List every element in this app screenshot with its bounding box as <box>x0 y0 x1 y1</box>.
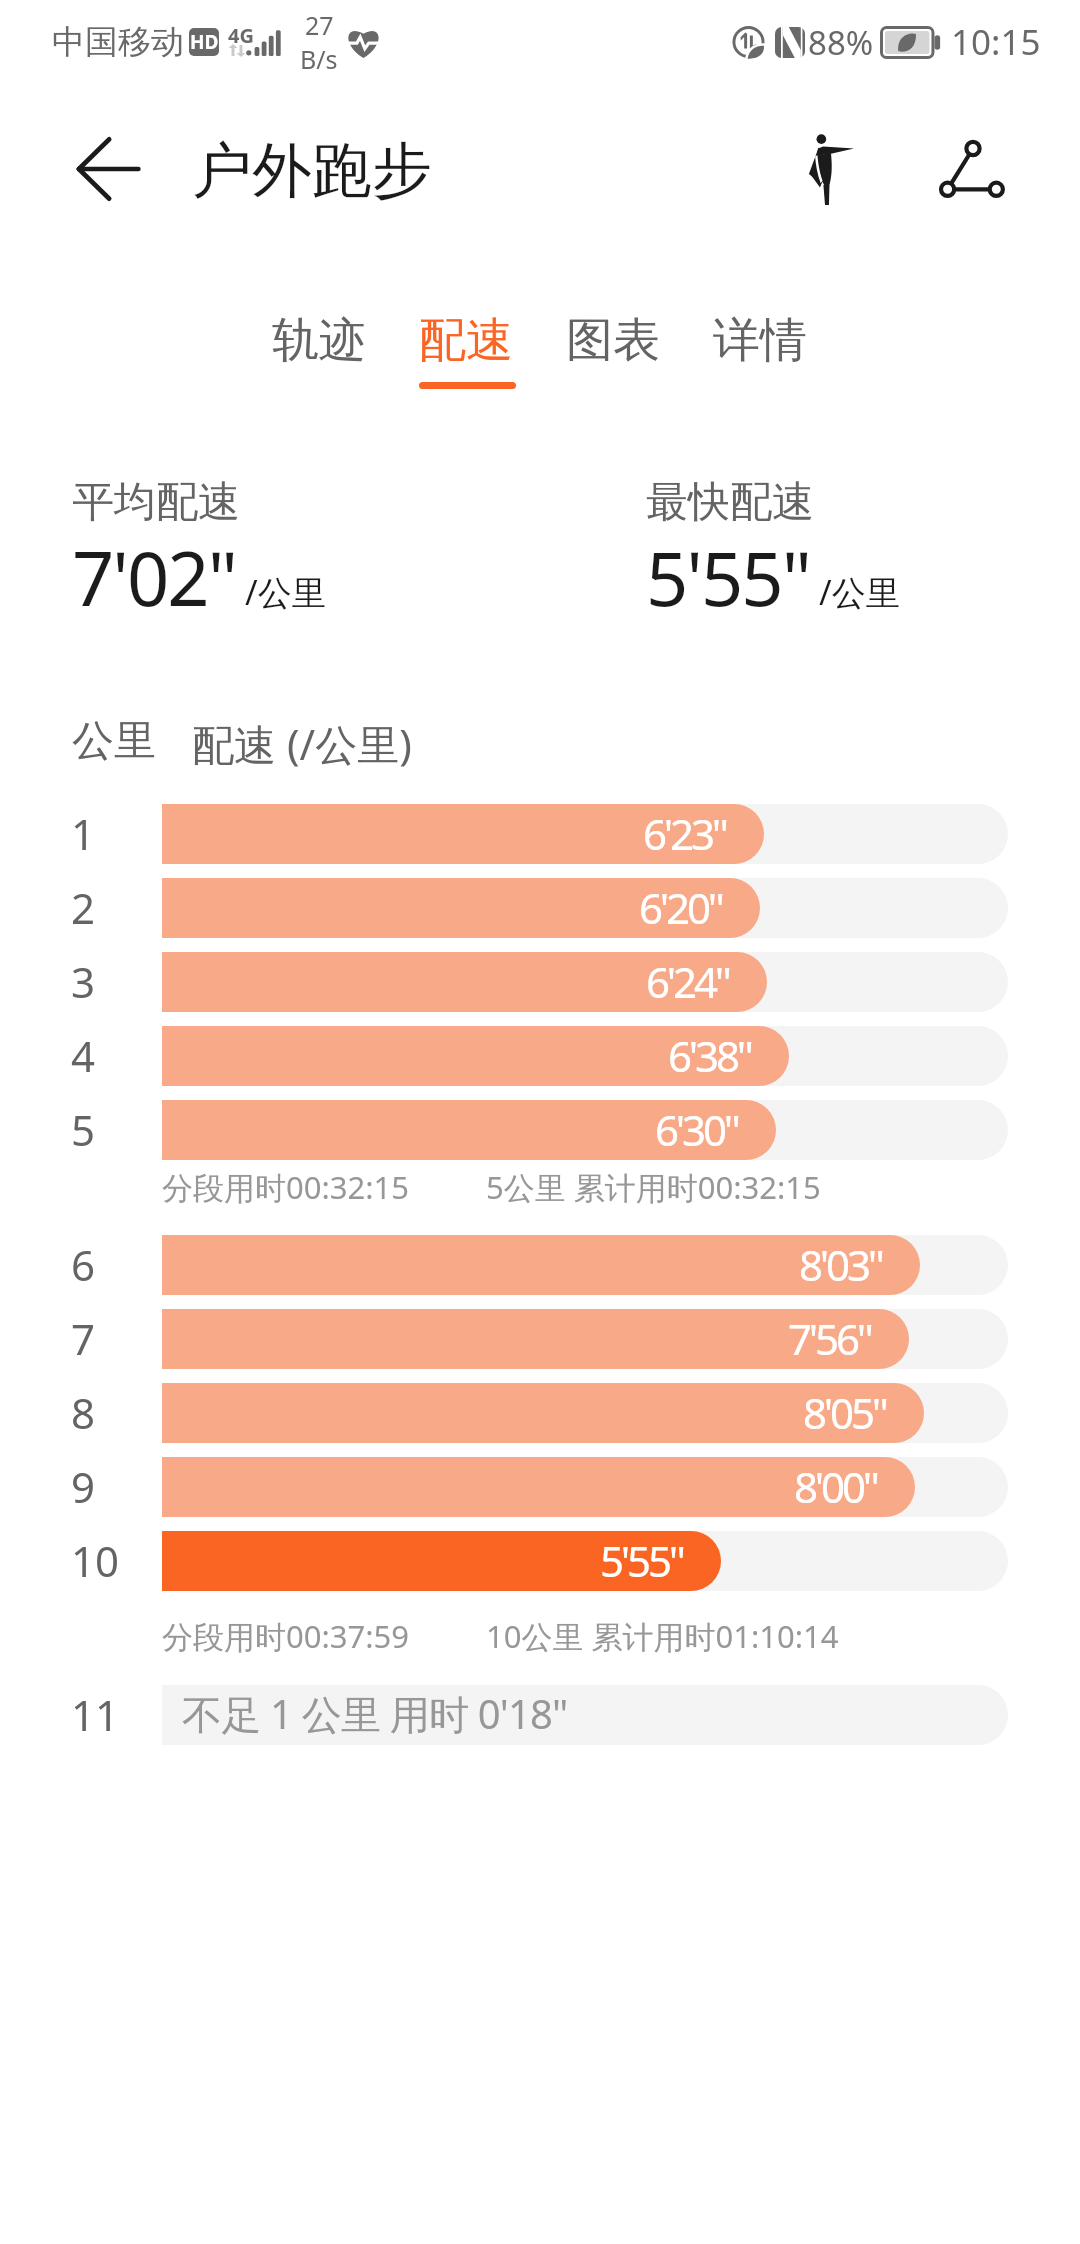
button[interactable]: 8 <box>0 1376 1080 1450</box>
button[interactable]: 3 <box>0 945 1080 1019</box>
staticText: 6'24" <box>646 953 729 1010</box>
staticText: 6'38" <box>668 1027 751 1084</box>
staticText: 9 <box>71 1458 96 1515</box>
button[interactable]: 2 <box>0 871 1080 945</box>
staticText: 5'55" <box>600 1532 683 1589</box>
staticText: 8 <box>71 1384 96 1441</box>
staticText: 平均配速 <box>72 476 240 529</box>
staticText: /公里 <box>245 569 326 615</box>
staticText: 10公里 累计用时01:10:14 <box>486 1615 839 1657</box>
staticText: 2 <box>71 879 96 936</box>
staticText: 分段用时00:37:59 <box>162 1615 410 1657</box>
staticText: /公里 <box>819 569 900 615</box>
button[interactable]: 9 <box>0 1450 1080 1524</box>
button[interactable]: Workout type <box>771 109 891 229</box>
staticText: 6'23" <box>643 805 726 862</box>
staticText: 27 <box>305 8 334 42</box>
staticText: 7'56" <box>788 1310 871 1367</box>
staticText: B/s <box>300 42 338 76</box>
staticText: 8'05" <box>803 1384 886 1441</box>
staticText: 7 <box>71 1310 96 1367</box>
button[interactable]: 配速 <box>392 311 539 411</box>
staticText: 7'02" <box>72 527 236 628</box>
button[interactable]: 4 <box>0 1019 1080 1093</box>
button[interactable]: 6 <box>0 1228 1080 1302</box>
staticText: 公里 <box>72 715 156 768</box>
staticText: 8'00" <box>794 1458 877 1515</box>
staticText: 分段用时00:32:15 <box>162 1166 410 1208</box>
staticText: 6 <box>71 1236 96 1293</box>
staticText: 1 <box>71 805 96 862</box>
staticText: 户外跑步 <box>192 133 432 209</box>
staticText: 6'20" <box>639 879 722 936</box>
staticText: 图表 <box>566 311 660 370</box>
button[interactable]: 10 <box>0 1524 1080 1598</box>
staticText: 不足 1 公里 用时 0'18" <box>182 1686 568 1741</box>
staticText: 4G <box>228 22 254 49</box>
staticText: 轨迹 <box>272 311 366 370</box>
button[interactable]: 1 <box>0 797 1080 871</box>
staticText: 详情 <box>713 311 807 370</box>
button[interactable]: 详情 <box>686 311 833 411</box>
staticText: 3 <box>71 953 96 1010</box>
staticText: 88% <box>808 20 874 65</box>
button[interactable]: 图表 <box>539 311 686 411</box>
staticText: 5公里 累计用时00:32:15 <box>486 1166 821 1208</box>
staticText: 5'55" <box>646 527 810 628</box>
button[interactable]: 7 <box>0 1302 1080 1376</box>
staticText: 最快配速 <box>646 476 814 529</box>
staticText: 10 <box>71 1532 120 1589</box>
staticText: 11 <box>71 1686 120 1743</box>
staticText: 中国移动 <box>52 21 184 63</box>
staticText: 配速 <box>419 311 513 370</box>
staticText: 10:15 <box>951 18 1041 66</box>
button[interactable]: Share <box>912 109 1032 229</box>
staticText: 8'03" <box>799 1236 882 1293</box>
button[interactable]: 5 <box>0 1093 1080 1167</box>
button[interactable]: 轨迹 <box>245 311 392 411</box>
staticText: HD <box>190 29 219 55</box>
staticText: 4 <box>71 1027 96 1084</box>
button[interactable]: Back <box>30 109 186 229</box>
staticText: 6'30" <box>655 1101 738 1158</box>
button[interactable]: 11 <box>0 1678 1080 1752</box>
staticText: 5 <box>71 1101 96 1158</box>
staticText: 配速 (/公里) <box>192 715 412 772</box>
